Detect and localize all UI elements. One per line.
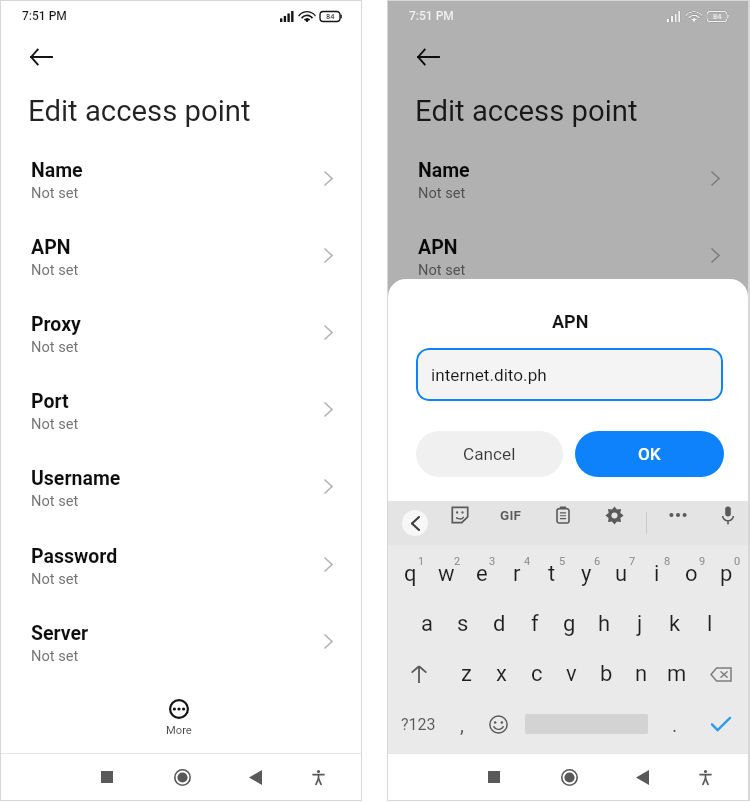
staticText: 84 (713, 12, 722, 21)
staticText: 6 (594, 555, 601, 568)
button[interactable]: Name (1, 159, 361, 235)
button[interactable]: . (657, 699, 693, 749)
button[interactable]: Proxy (1, 313, 361, 389)
staticText: j (637, 611, 643, 637)
staticText: 7:51 PM (409, 9, 454, 23)
button[interactable]: e (464, 549, 499, 599)
button[interactable]: n (624, 649, 659, 699)
button[interactable]: g (552, 599, 587, 649)
button[interactable]: Shift (388, 649, 449, 699)
button[interactable]: Username (388, 467, 748, 543)
button[interactable]: GIF (497, 501, 525, 529)
button[interactable]: Enter (696, 699, 746, 749)
staticText: d (493, 611, 506, 637)
button[interactable]: Name (388, 159, 748, 235)
button[interactable]: q (392, 549, 428, 599)
button[interactable]: Voice input (714, 501, 742, 529)
button[interactable]: Backspace (694, 649, 748, 699)
staticText: Port (31, 390, 69, 413)
staticText: 8 (664, 555, 671, 568)
button[interactable]: a (409, 599, 445, 649)
staticText: Name (418, 159, 470, 182)
button[interactable]: Collapse toolbar (402, 510, 428, 536)
button[interactable]: Back (20, 36, 62, 78)
staticText: APN (552, 311, 589, 332)
button[interactable]: Proxy (388, 313, 748, 389)
button[interactable]: c (519, 649, 554, 699)
button[interactable]: Accessibility (297, 756, 339, 798)
button[interactable]: h (587, 599, 622, 649)
staticText: Not set (418, 338, 466, 355)
button[interactable]: u (604, 549, 639, 599)
button[interactable]: s (445, 599, 481, 649)
staticText: t (548, 561, 556, 587)
button[interactable]: More (158, 699, 200, 737)
staticText: Edit access point (28, 94, 251, 128)
staticText: Username (418, 467, 508, 490)
button[interactable]: APN (1, 236, 361, 312)
button[interactable]: More options (664, 501, 692, 529)
staticText: 84 (713, 12, 722, 21)
button[interactable]: Clipboard (549, 501, 577, 529)
button[interactable]: b (589, 649, 624, 699)
button[interactable]: Cancel (416, 431, 563, 477)
button[interactable]: ?123 (392, 699, 444, 749)
button[interactable]: y (569, 549, 604, 599)
button[interactable]: Settings (600, 501, 628, 529)
button[interactable]: Username (1, 467, 361, 543)
button[interactable]: Password (388, 545, 748, 621)
button[interactable]: Port (388, 390, 748, 466)
button[interactable]: Emoji (480, 699, 516, 749)
button[interactable]: j (622, 599, 657, 649)
button[interactable]: r (499, 549, 534, 599)
staticText: i (654, 561, 660, 587)
button[interactable]: t (534, 549, 569, 599)
button[interactable]: z (449, 649, 484, 699)
staticText: Proxy (31, 313, 81, 336)
button[interactable]: More (545, 699, 587, 737)
staticText: a (421, 611, 433, 637)
button[interactable]: v (554, 649, 589, 699)
button[interactable]: Recents (86, 756, 128, 798)
button[interactable]: Home (548, 756, 590, 798)
button[interactable]: m (659, 649, 694, 699)
button[interactable]: Home (161, 756, 203, 798)
button[interactable]: Server (388, 622, 748, 698)
button[interactable]: Back (234, 756, 276, 798)
button[interactable]: k (657, 599, 692, 649)
staticText: 2 (454, 555, 461, 568)
button[interactable]: Server (1, 622, 361, 698)
staticText: f (531, 611, 539, 637)
button[interactable]: x (484, 649, 519, 699)
button[interactable]: internet.dito.ph (416, 348, 723, 401)
staticText: APN (31, 236, 71, 259)
staticText: h (598, 611, 611, 637)
staticText: 3 (489, 555, 496, 568)
staticText: Not set (418, 261, 466, 278)
button[interactable]: , (444, 699, 480, 749)
button[interactable]: Accessibility (684, 756, 726, 798)
staticText: g (563, 611, 576, 637)
button[interactable]: Back (621, 756, 663, 798)
staticText: r (513, 561, 521, 587)
staticText: b (600, 661, 613, 687)
button[interactable]: Space (516, 699, 656, 749)
button[interactable]: Port (1, 390, 361, 466)
button[interactable]: Back (407, 36, 449, 78)
button[interactable]: f (517, 599, 552, 649)
button[interactable]: OK (575, 431, 724, 477)
button[interactable]: w (428, 549, 464, 599)
staticText: OK (638, 444, 661, 464)
button[interactable]: l (692, 599, 727, 649)
button[interactable]: APN (388, 236, 748, 312)
staticText: c (531, 661, 543, 687)
button[interactable]: d (481, 599, 517, 649)
button[interactable]: o (674, 549, 709, 599)
staticText: u (615, 561, 628, 587)
button[interactable]: i (639, 549, 674, 599)
staticText: s (457, 611, 469, 637)
button[interactable]: p (709, 549, 744, 599)
button[interactable]: Stickers (446, 501, 474, 529)
button[interactable]: Password (1, 545, 361, 621)
button[interactable]: Recents (473, 756, 515, 798)
